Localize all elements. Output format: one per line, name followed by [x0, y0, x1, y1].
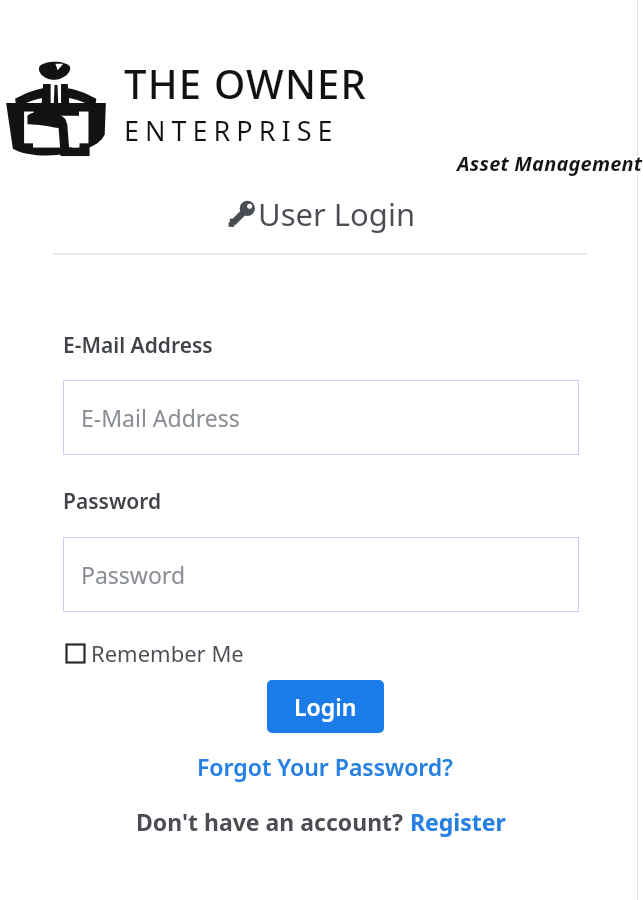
other: The Owner Enterprise logo [0, 58, 112, 164]
button[interactable]: Password [63, 537, 579, 612]
staticText: Password [81, 559, 186, 590]
staticText: ENTERPRISE [124, 112, 339, 149]
staticText: Forgot Your Password? [197, 751, 453, 782]
staticText: E-Mail Address [63, 331, 213, 360]
button[interactable]: Remember Me [66, 638, 244, 668]
staticText: E-Mail Address [81, 402, 240, 433]
button[interactable]: Forgot Your Password? [195, 750, 455, 783]
staticText: Login [294, 691, 357, 722]
button[interactable]: E-Mail Address [63, 380, 579, 455]
staticText: Password [63, 487, 162, 516]
staticText: THE OWNER [124, 56, 368, 110]
staticText: Register [410, 806, 506, 837]
staticText: User Login [258, 193, 416, 235]
button[interactable]: Register [410, 806, 506, 837]
staticText: Remember Me [91, 638, 244, 668]
button[interactable]: Login [267, 680, 384, 733]
staticText: Don't have an account? [136, 806, 410, 837]
staticText: Asset Management [457, 150, 643, 177]
other: Login key [228, 199, 258, 229]
